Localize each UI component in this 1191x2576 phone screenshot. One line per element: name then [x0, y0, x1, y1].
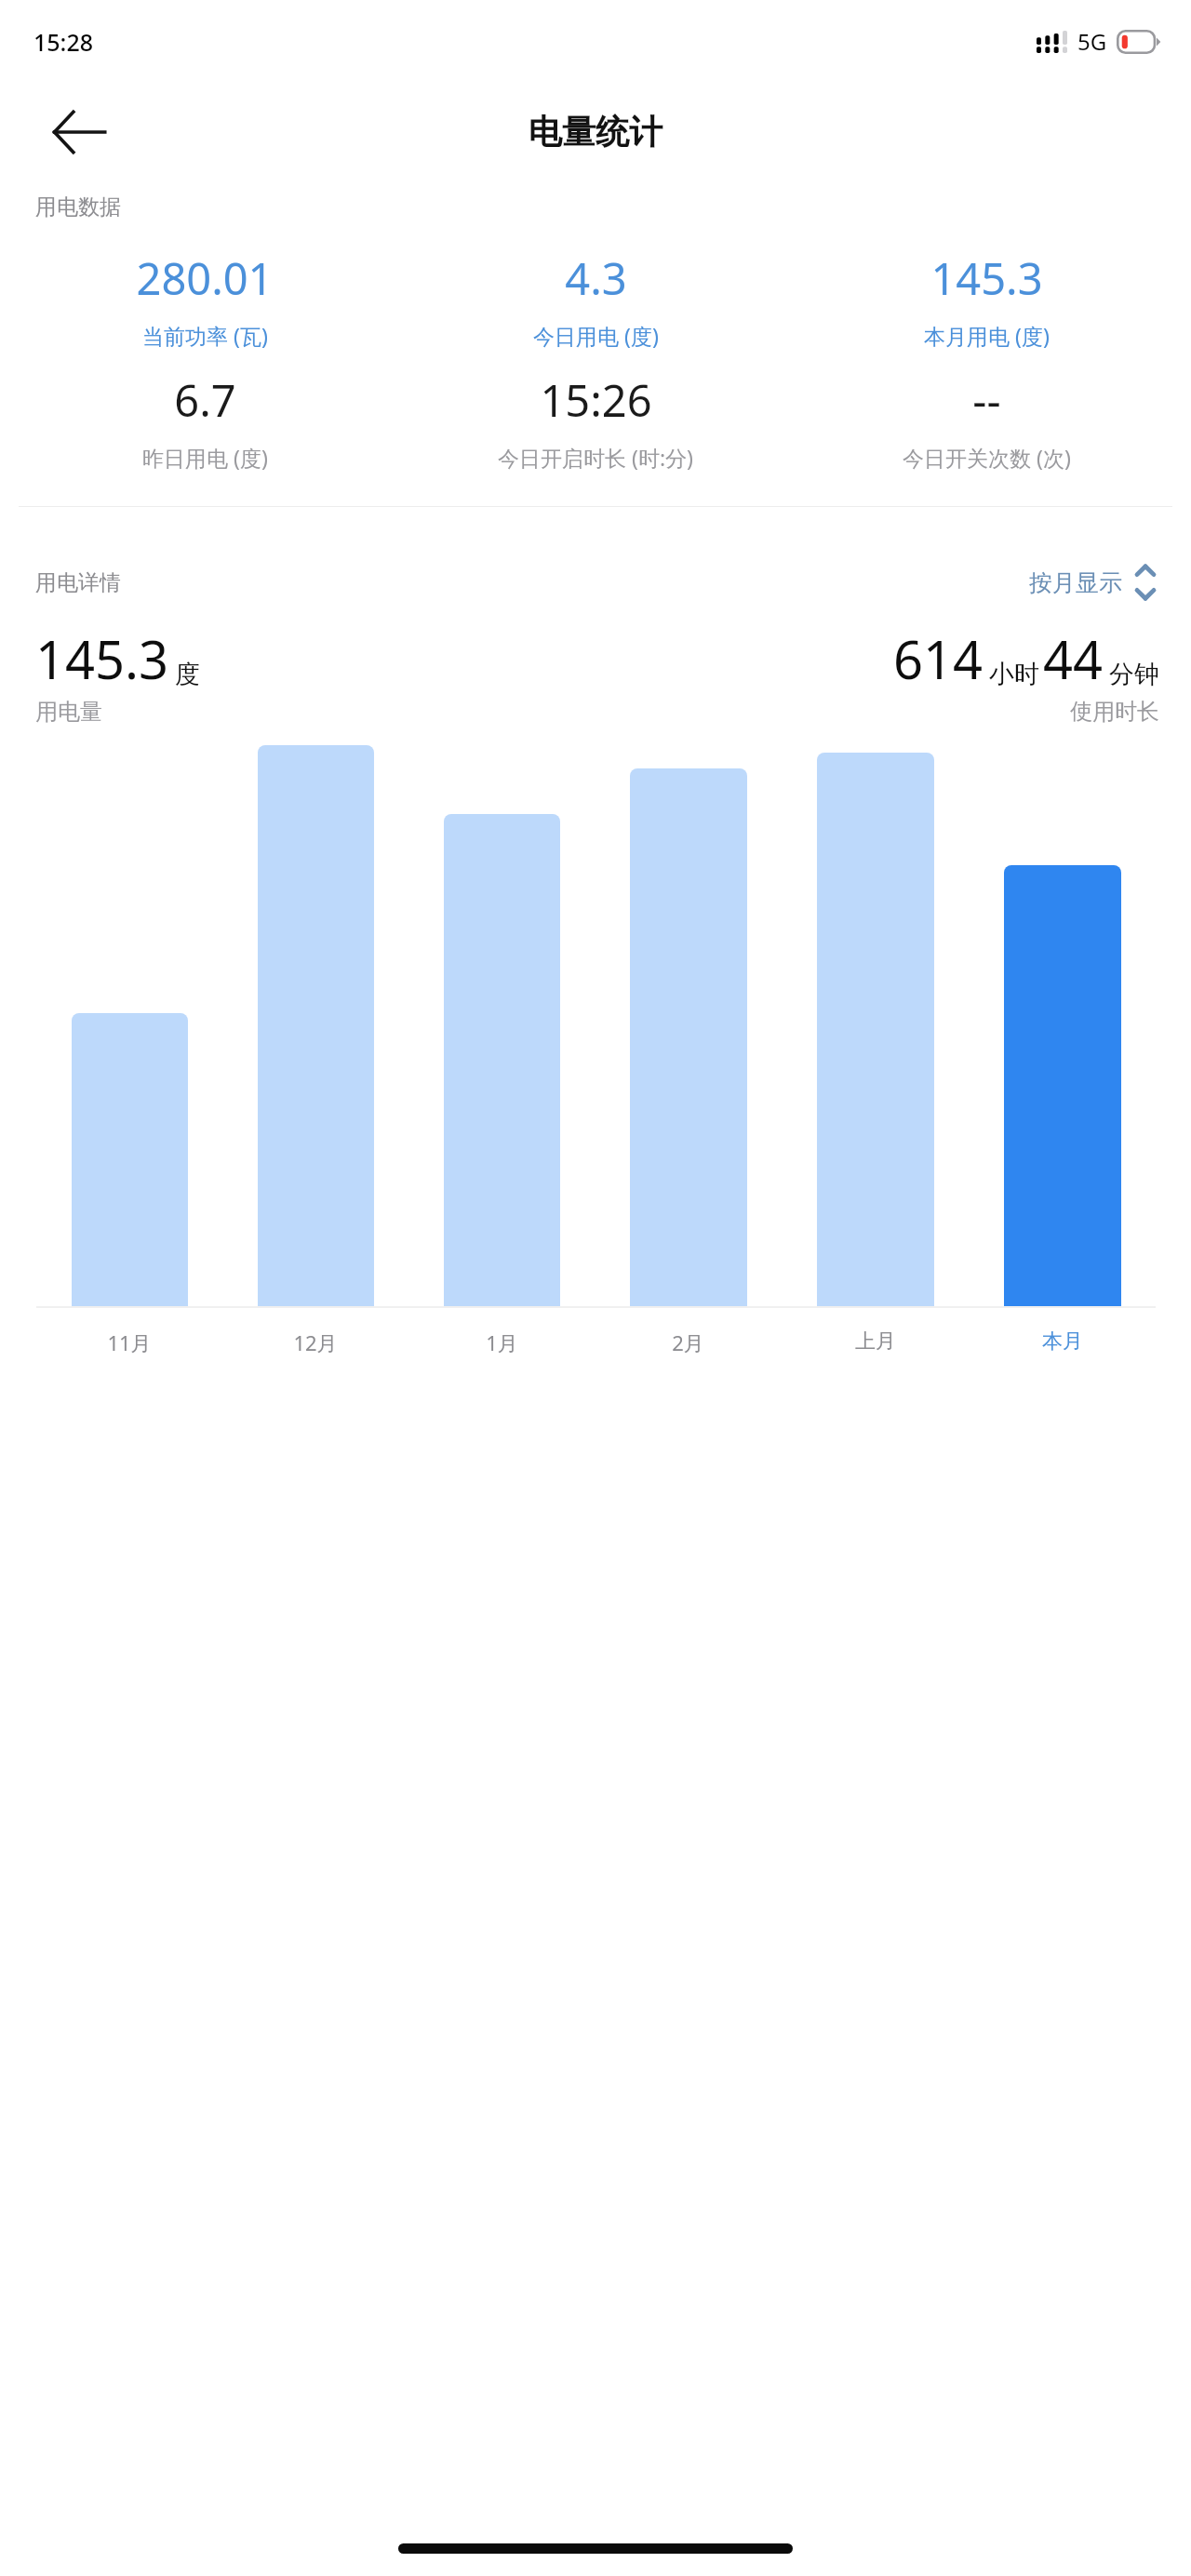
staticText: 本月	[1042, 1328, 1083, 1355]
staticText: 度	[175, 659, 200, 690]
staticText: 电量统计	[529, 111, 662, 153]
button[interactable]	[630, 768, 747, 1308]
staticText: 用电量	[35, 698, 102, 726]
staticText: 280.01	[136, 248, 274, 308]
staticText: 614	[893, 623, 984, 694]
button[interactable]	[1004, 865, 1121, 1308]
button[interactable]	[444, 814, 560, 1308]
staticText: 当前功率 (瓦)	[142, 321, 268, 350]
staticText: 15:26	[540, 370, 652, 430]
staticText: 分钟	[1109, 659, 1159, 690]
staticText: 按月显示	[1029, 568, 1122, 597]
staticText: 145.3	[930, 248, 1043, 308]
staticText: 6.7	[174, 370, 236, 430]
staticText: 15:28	[33, 26, 94, 58]
staticText: 44	[1043, 623, 1104, 694]
button[interactable]	[258, 745, 374, 1308]
staticText: 11月	[107, 1328, 152, 1356]
staticText: 用电详情	[35, 569, 121, 596]
staticText: 使用时长	[1070, 698, 1159, 726]
staticText: 今日开启时长 (时:分)	[498, 443, 693, 472]
staticText: 今日开关次数 (次)	[903, 443, 1071, 472]
staticText: 今日用电 (度)	[533, 321, 659, 350]
staticText: 昨日用电 (度)	[142, 443, 268, 472]
staticText: 4.3	[565, 248, 627, 308]
staticText: 12月	[293, 1328, 338, 1356]
staticText: 用电数据	[35, 194, 121, 220]
staticText: --	[972, 370, 1001, 430]
staticText: 本月用电 (度)	[924, 321, 1050, 350]
button[interactable]: 返回	[48, 101, 110, 163]
staticText: 5G	[1077, 26, 1107, 57]
staticText: 2月	[672, 1328, 704, 1356]
staticText: 小时	[989, 659, 1039, 690]
staticText: 145.3	[35, 623, 169, 694]
button[interactable]: 按月显示	[1029, 564, 1159, 601]
button[interactable]	[72, 1013, 188, 1308]
staticText: 上月	[855, 1328, 896, 1355]
staticText: 1月	[486, 1328, 518, 1356]
